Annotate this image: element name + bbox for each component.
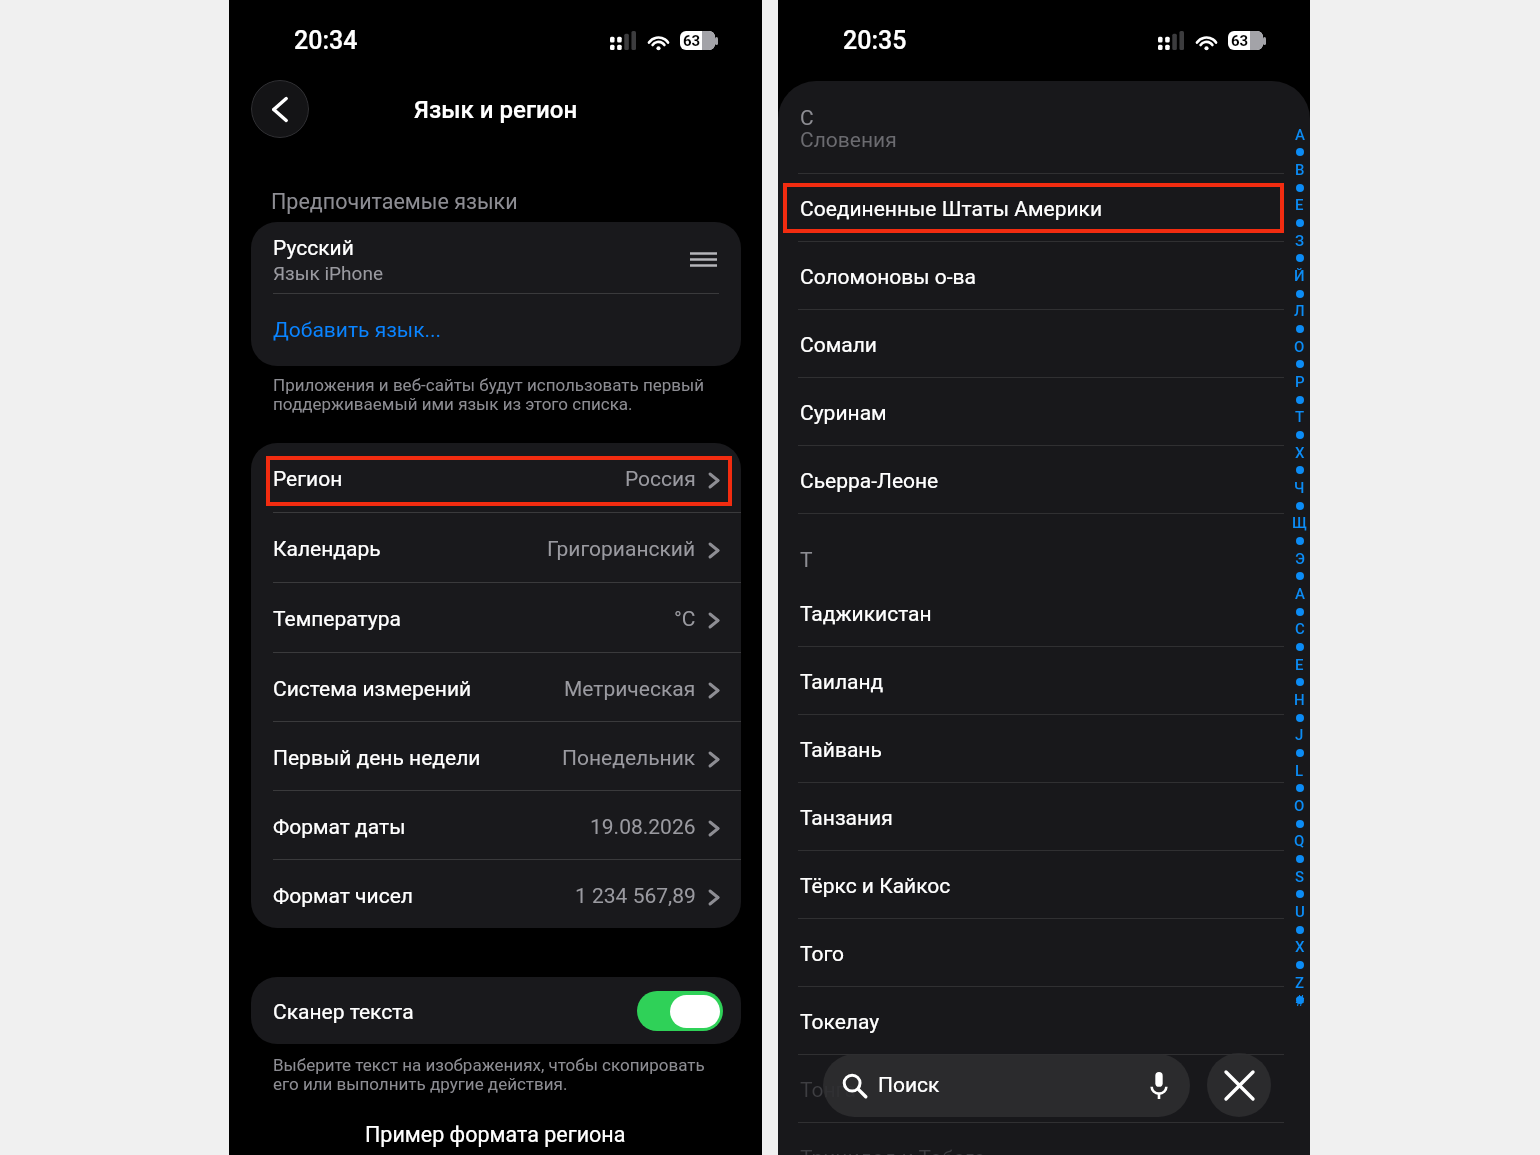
button[interactable]: Тёркс и Кайкос [778,851,1310,918]
staticText: Соединенные Штаты Америки [800,197,1103,222]
staticText: Добавить язык... [273,318,442,343]
staticText: Язык и регион [414,96,578,124]
button[interactable]: Таджикистан [778,579,1310,646]
staticText: 63 [683,32,701,50]
staticText: Первый день недели [273,746,481,771]
staticText: Щ [1292,514,1307,532]
staticText: Приложения и веб-сайты будут использоват… [273,375,704,414]
staticText: Токелау [800,1010,880,1035]
staticText: L [1295,762,1304,780]
staticText: Соломоновы о-ва [800,265,976,290]
staticText: Сканер текста [273,1000,637,1025]
staticText: Т [1295,408,1305,426]
staticText: Система измерений [273,677,472,702]
staticText: Суринам [800,401,887,426]
staticText: Температура [273,607,401,632]
staticText: Танзания [800,806,893,831]
staticText: Таиланд [800,670,884,695]
staticText: З [1295,232,1305,250]
button[interactable]: Первый день недели [251,722,741,790]
staticText: O [1294,797,1305,815]
staticText: Сомали [800,333,877,358]
staticText: Формат чисел [273,884,413,909]
staticText: H [1294,691,1305,709]
staticText: 63 [1231,32,1249,50]
staticText: 1 234 567,89 [575,884,696,909]
staticText: 19.08.2026 [590,815,696,840]
staticText: Пример формата региона [365,1122,626,1147]
staticText: Тёркс и Кайкос [800,874,951,899]
staticText: А [1295,126,1305,144]
button[interactable]: Поиск [823,1054,1190,1117]
staticText: Л [1294,302,1305,320]
staticText: C [1295,620,1305,638]
button[interactable]: Сомали [778,310,1310,377]
button[interactable]: Формат даты [251,791,741,859]
staticText: Русский [273,236,354,261]
button[interactable]: Section index [1286,120,1312,1020]
staticText: Р [1295,373,1305,391]
staticText: Язык iPhone [273,262,383,284]
staticText: Формат даты [273,815,406,840]
staticText: Тайвань [800,738,882,763]
button[interactable]: Back [251,80,309,138]
button[interactable]: Календарь [251,513,741,582]
staticText: Словения [800,128,897,153]
button[interactable]: Формат чисел [251,860,741,928]
staticText: °C [674,607,696,632]
staticText: О [1294,338,1305,356]
staticText: E [1295,656,1304,674]
staticText: Е [1295,196,1304,214]
button[interactable]: Температура [251,583,741,652]
staticText: S [1295,868,1305,886]
staticText: Календарь [273,537,381,562]
button[interactable]: Токелау [778,987,1310,1054]
staticText: Тринидад и Тобаго [800,1146,986,1155]
button[interactable]: Регион [251,443,741,512]
button[interactable]: Таиланд [778,647,1310,714]
staticText: T [800,548,813,573]
staticText: Выберите текст на изображениях, чтобы ск… [273,1055,705,1094]
staticText: Тонга [800,1078,856,1103]
staticText: U [1295,903,1305,921]
button[interactable]: Добавить язык... [251,294,741,366]
button[interactable]: Русский [251,222,741,293]
staticText: Понедельник [562,746,696,771]
button[interactable]: Соломоновы о-ва [778,242,1310,309]
staticText: C [800,106,814,131]
staticText: Того [800,942,845,967]
staticText: J [1295,726,1304,744]
staticText: Э [1295,550,1305,568]
staticText: Таджикистан [800,602,932,627]
button[interactable]: Сканер текста [251,977,741,1044]
staticText: A [1295,585,1305,603]
staticText: Q [1294,832,1305,850]
staticText: 20:35 [843,26,907,55]
staticText: Поиск [878,1073,1151,1098]
staticText: Сьерра-Леоне [800,469,939,494]
button[interactable]: Соединенные Штаты Америки [778,174,1310,241]
staticText: Регион [273,467,343,492]
staticText: Григорианский [547,537,696,562]
button[interactable]: Система измерений [251,653,741,721]
button[interactable]: Того [778,919,1310,986]
button[interactable]: Сьерра-Леоне [778,446,1310,513]
staticText: Й [1294,267,1305,285]
staticText: Z [1295,974,1305,992]
staticText: Ч [1294,479,1305,497]
button[interactable]: Тайвань [778,715,1310,782]
button[interactable]: Танзания [778,783,1310,850]
staticText: 20:34 [294,26,358,55]
staticText: X [1295,938,1305,956]
staticText: Х [1295,444,1305,462]
staticText: Предпочитаемые языки [271,189,518,214]
staticText: Россия [625,467,696,492]
button[interactable]: Close [1207,1053,1271,1117]
button[interactable]: Суринам [778,378,1310,445]
button[interactable]: Тонга [778,1055,1310,1122]
staticText: Метрическая [564,677,696,702]
staticText: # [1295,992,1305,1010]
staticText: В [1295,161,1305,179]
